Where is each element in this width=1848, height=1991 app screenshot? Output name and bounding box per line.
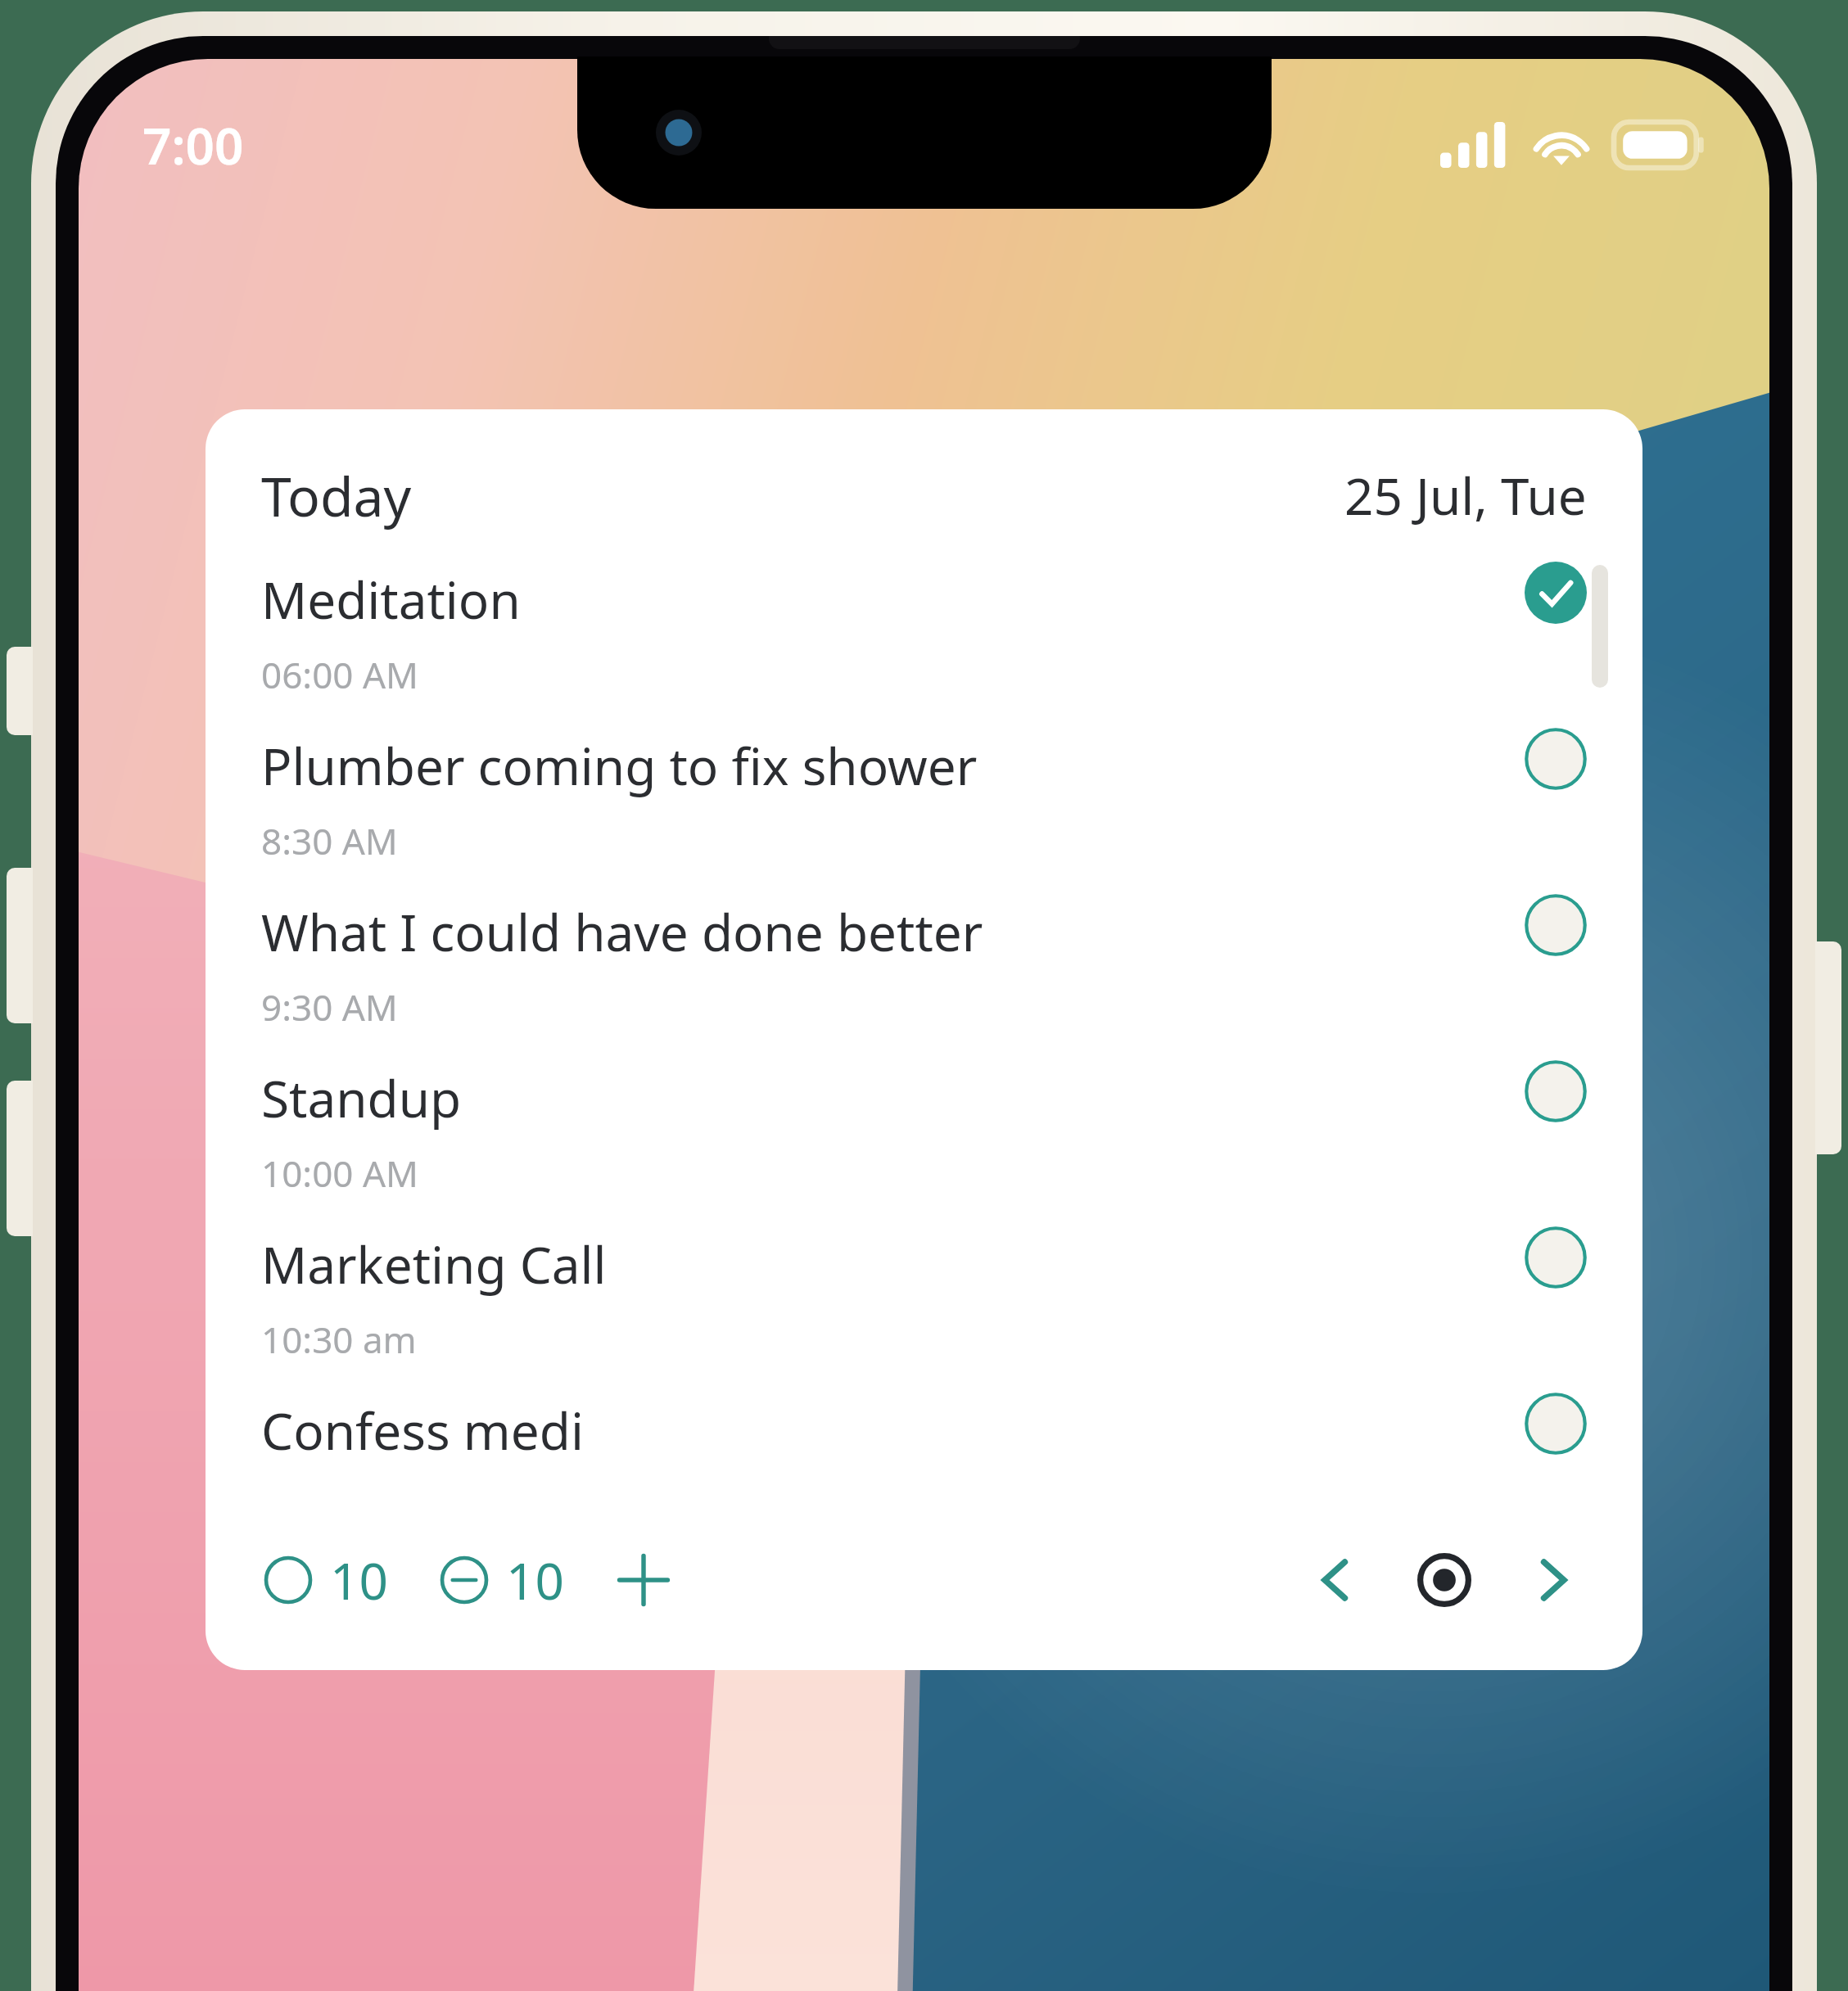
button[interactable]: Mark complete [1525, 1226, 1587, 1289]
button[interactable]: Plumber coming to fix shower [206, 716, 1642, 883]
staticText: 25 Jul, Tue [1344, 461, 1587, 530]
button[interactable]: Meditation [206, 550, 1642, 716]
staticText: Meditation [261, 565, 521, 634]
button[interactable]: Completed [1525, 562, 1587, 624]
button[interactable]: Standup [206, 1049, 1642, 1215]
button[interactable]: Mark complete [1525, 894, 1587, 956]
staticText: 9:30 AM [261, 982, 398, 1032]
staticText: 10:00 AM [261, 1149, 418, 1198]
staticText: Marketing Call [261, 1230, 607, 1298]
button[interactable]: Confess medi [206, 1381, 1642, 1490]
staticText: 10 [506, 1546, 564, 1614]
staticText: Plumber coming to fix shower [261, 731, 978, 800]
staticText: 8:30 AM [261, 816, 398, 865]
staticText: 10:30 am [261, 1315, 417, 1364]
button[interactable]: Mark complete [1525, 728, 1587, 790]
button[interactable]: 10 [432, 1534, 571, 1626]
button[interactable]: Next day [1513, 1541, 1592, 1619]
staticText: Standup [261, 1063, 462, 1132]
button[interactable]: Mark complete [1525, 1393, 1587, 1455]
staticText: Confess medi [261, 1396, 584, 1465]
button[interactable]: Mark complete [1525, 1060, 1587, 1122]
button[interactable]: Today [1405, 1541, 1484, 1619]
staticText: Today [261, 458, 412, 532]
button[interactable]: What I could have done better [206, 883, 1642, 1049]
staticText: What I could have done better [261, 897, 983, 966]
button[interactable]: Add task [608, 1545, 679, 1615]
button[interactable]: Previous day [1297, 1541, 1376, 1619]
staticText: 10 [330, 1546, 388, 1614]
staticText: 7:00 [142, 111, 244, 179]
button[interactable]: 10 [256, 1534, 395, 1626]
button[interactable]: Marketing Call [206, 1215, 1642, 1381]
staticText: 06:00 AM [261, 650, 418, 699]
